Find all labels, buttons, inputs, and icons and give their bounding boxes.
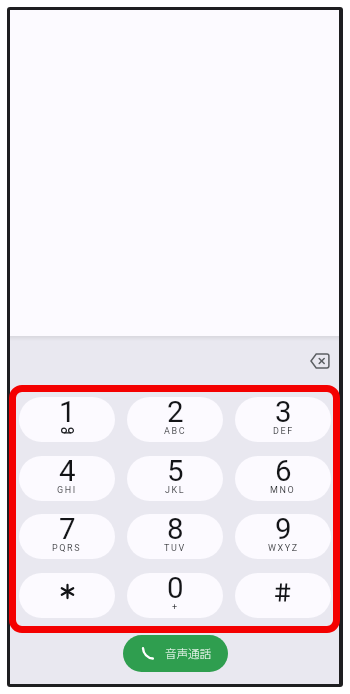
staticText: + xyxy=(172,602,179,613)
staticText: WXYZ xyxy=(268,543,299,554)
staticText: 1 xyxy=(59,397,76,430)
staticText: MNO xyxy=(270,485,296,496)
staticText: 0 xyxy=(167,573,184,606)
button[interactable]: 0 xyxy=(127,573,223,618)
staticText: JKL xyxy=(165,485,186,496)
staticText: 2 xyxy=(167,397,184,430)
staticText: 5 xyxy=(167,456,184,489)
button[interactable]: 音声通話 xyxy=(123,635,228,672)
staticText: 3 xyxy=(275,397,292,430)
button[interactable]: 3 xyxy=(235,397,331,442)
staticText: GHI xyxy=(57,485,77,496)
button[interactable]: 9 xyxy=(235,514,331,559)
staticText: 4 xyxy=(59,456,76,489)
button[interactable]: 5 xyxy=(127,456,223,501)
staticText: 8 xyxy=(167,514,184,547)
button[interactable]: 4 xyxy=(19,456,115,501)
button[interactable]: 2 xyxy=(127,397,223,442)
staticText: 7 xyxy=(59,514,76,547)
staticText: ABC xyxy=(164,426,187,437)
button[interactable] xyxy=(303,346,337,376)
staticText: 6 xyxy=(275,456,292,489)
button[interactable]: 1 xyxy=(19,397,115,442)
staticText: TUV xyxy=(164,543,186,554)
staticText: PQRS xyxy=(52,543,82,554)
button[interactable]: 8 xyxy=(127,514,223,559)
staticText: DEF xyxy=(273,426,294,437)
button[interactable]: 7 xyxy=(19,514,115,559)
button[interactable] xyxy=(235,573,331,618)
staticText: 音声通話 xyxy=(165,645,211,662)
staticText: 9 xyxy=(275,514,292,547)
button[interactable]: 6 xyxy=(235,456,331,501)
button[interactable] xyxy=(19,573,115,618)
